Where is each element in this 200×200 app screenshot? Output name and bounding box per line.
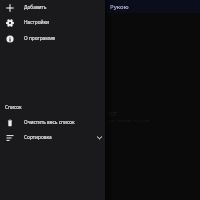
button[interactable]: Settings bbox=[0, 15, 105, 30]
staticText: Добавить bbox=[24, 4, 47, 11]
staticText: О программе bbox=[24, 35, 56, 42]
button[interactable]: Sorting bbox=[0, 130, 105, 145]
staticText: Рукою bbox=[110, 3, 129, 11]
staticText: ЮТ bbox=[109, 111, 117, 118]
staticText: Список bbox=[5, 104, 22, 111]
button[interactable]: Add bbox=[0, 0, 105, 15]
staticText: Очистить весь список bbox=[24, 119, 75, 126]
staticText: Настройки bbox=[24, 19, 50, 26]
button[interactable]: About bbox=[0, 31, 105, 46]
button[interactable]: Clear list bbox=[0, 115, 105, 130]
staticText: Сортировка bbox=[24, 134, 52, 141]
